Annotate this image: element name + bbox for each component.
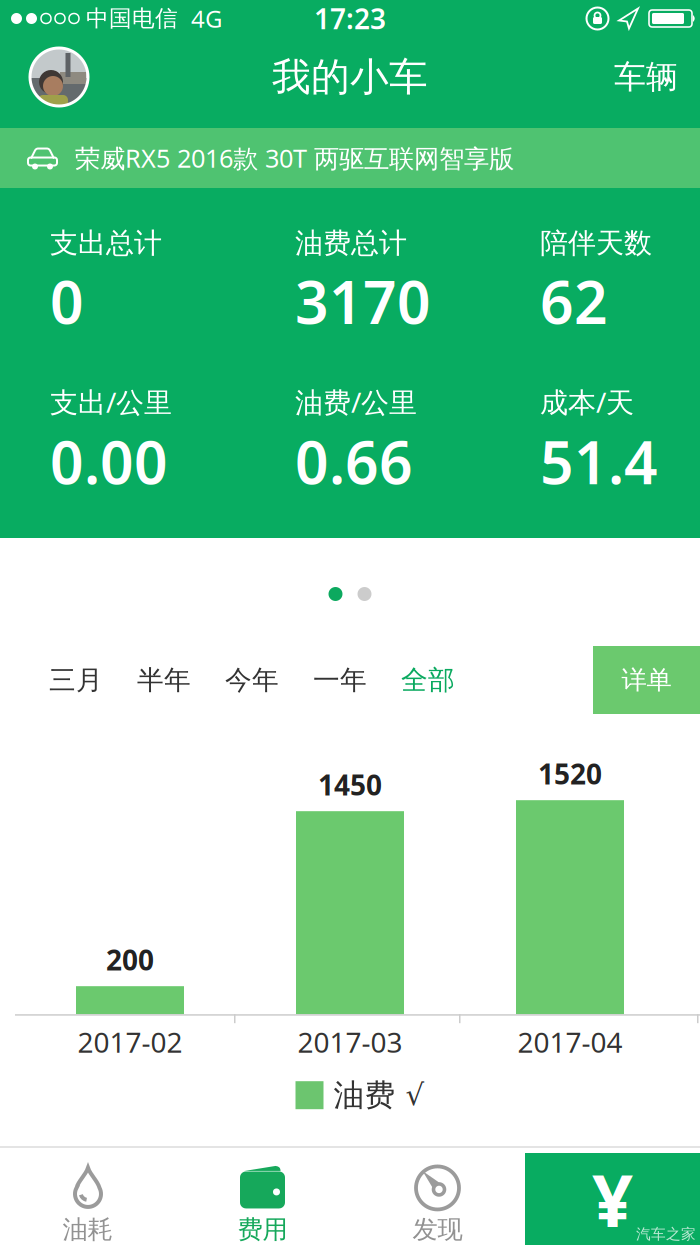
staticText: 油费总计 [295, 226, 407, 260]
staticText: 2017-04 [517, 1023, 622, 1060]
staticText: 费用 [237, 1214, 287, 1245]
staticText: 成本/天 [540, 383, 634, 420]
staticText: 荣威RX5 2016款 30T 两驱互联网智享版 [75, 141, 514, 175]
button[interactable]: 荣威RX5 2016款 30T 两驱互联网智享版 [0, 128, 700, 188]
staticText: 全部 [401, 664, 455, 696]
staticText: 油耗 [62, 1214, 112, 1245]
button[interactable]: 半年 [137, 664, 191, 696]
staticText: 17:23 [314, 0, 386, 37]
button[interactable]: 一年 [313, 664, 367, 696]
staticText: 详单 [621, 664, 671, 695]
staticText: 2017-03 [297, 1023, 402, 1060]
button[interactable]: 车辆 [614, 57, 678, 97]
staticText: ¥ [592, 1151, 633, 1245]
button[interactable]: 油耗 [0, 1146, 175, 1245]
staticText: 200 [106, 941, 154, 978]
staticText: √ [405, 1079, 424, 1112]
staticText: 中国电信 [86, 5, 178, 32]
staticText: 半年 [137, 664, 191, 696]
staticText: 三月 [49, 664, 103, 696]
staticText: 3170 [295, 262, 431, 340]
button[interactable]: 全部 [401, 664, 455, 696]
staticText: 4G [191, 3, 222, 34]
button[interactable]: 今年 [225, 664, 279, 696]
staticText: 0.00 [50, 422, 168, 500]
staticText: 1450 [318, 766, 382, 803]
staticText: 51.4 [540, 422, 658, 500]
staticText: 陪伴天数 [540, 226, 652, 260]
staticText: 0 [50, 262, 84, 340]
staticText: 62 [540, 262, 608, 340]
staticText: 油费 [333, 1076, 395, 1114]
staticText: 油费/公里 [295, 383, 417, 420]
button[interactable]: 记一笔 [525, 1153, 700, 1245]
staticText: 发现 [412, 1214, 462, 1245]
staticText: 一年 [313, 664, 367, 696]
staticText: 汽车之家 [636, 1225, 696, 1243]
button[interactable]: 详单 [593, 646, 700, 714]
button[interactable]: 费用 [175, 1146, 350, 1245]
staticText: 车辆 [614, 57, 678, 97]
staticText: 今年 [225, 664, 279, 696]
staticText: 支出总计 [50, 226, 162, 260]
button[interactable]: 个人头像 [30, 48, 88, 106]
staticText: 2017-02 [77, 1023, 182, 1060]
staticText: 我的小车 [272, 53, 428, 101]
staticText: 支出/公里 [50, 383, 172, 420]
button[interactable]: 发现 [350, 1146, 525, 1245]
staticText: 0.66 [295, 422, 413, 500]
staticText: 1520 [538, 755, 602, 792]
button[interactable]: 三月 [49, 664, 103, 696]
